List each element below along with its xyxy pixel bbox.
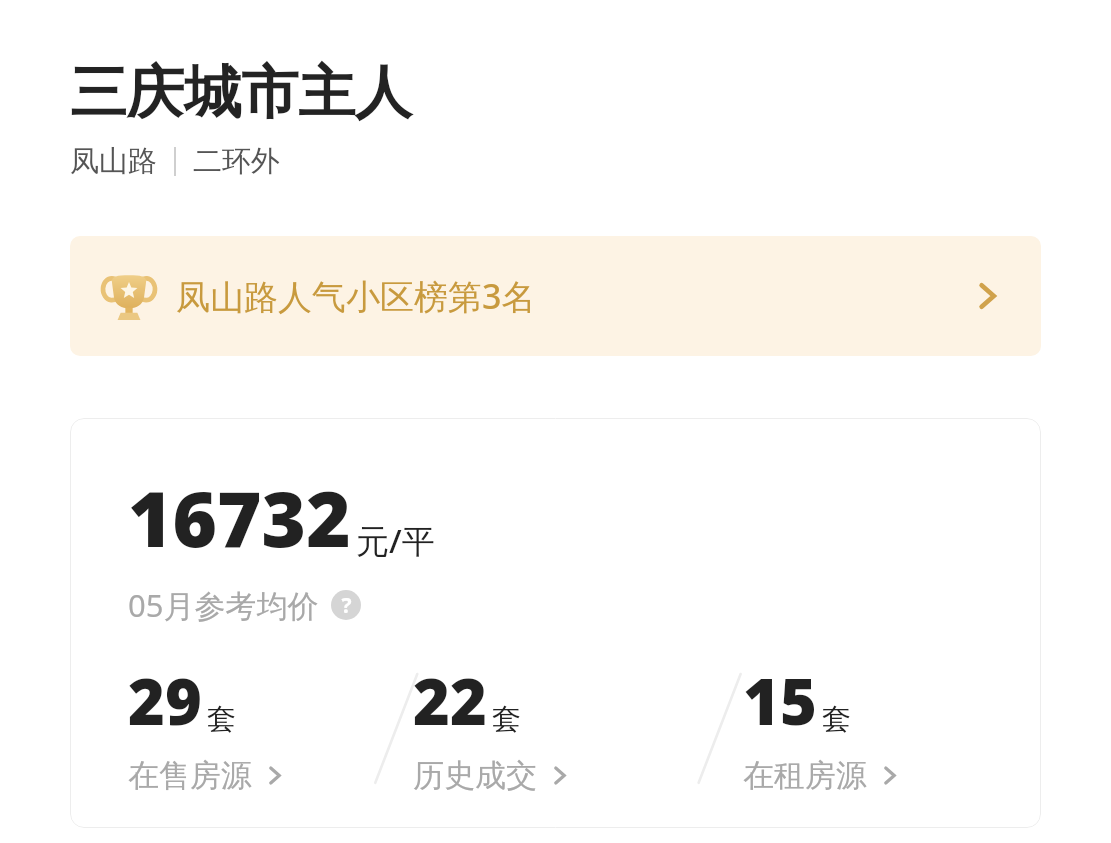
button[interactable]: Trophy	[70, 236, 1041, 356]
staticText: 套	[822, 701, 851, 738]
staticText: 16732	[128, 466, 351, 570]
staticText: 22	[413, 658, 487, 744]
staticText: 在售房源	[128, 756, 252, 795]
staticText: 凤山路	[70, 143, 157, 180]
other: Help	[331, 590, 361, 620]
button[interactable]: 29	[70, 658, 393, 795]
staticText: 套	[207, 701, 236, 738]
button[interactable]: 05月参考均价	[128, 584, 361, 626]
staticText: 在租房源	[743, 756, 867, 795]
staticText: 29	[128, 658, 202, 744]
staticText: 历史成交	[413, 756, 537, 795]
staticText: 二环外	[193, 143, 280, 180]
other: Trophy	[103, 270, 155, 322]
button[interactable]: 15	[717, 658, 1041, 795]
staticText: 凤山路人气小区榜第3名	[176, 273, 536, 319]
staticText: 套	[492, 701, 521, 738]
staticText: 三庆城市主人	[70, 57, 412, 129]
staticText: 元/平	[356, 518, 435, 563]
staticText: 05月参考均价	[128, 584, 319, 626]
staticText: ?	[341, 591, 352, 620]
button[interactable]: 22	[393, 658, 717, 795]
staticText: 15	[743, 658, 817, 744]
